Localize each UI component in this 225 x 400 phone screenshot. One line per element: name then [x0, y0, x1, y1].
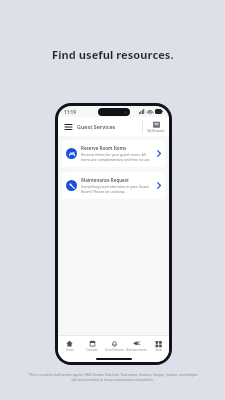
staticText: My Requests	[147, 129, 165, 133]
staticText: Find useful resources.	[52, 47, 174, 62]
button[interactable]: My Requests	[143, 117, 169, 136]
button[interactable]: Calendar	[81, 336, 103, 356]
staticText: Calendar	[86, 348, 98, 352]
staticText: *This is a custom built service app for …	[26, 373, 199, 382]
staticText: Home	[66, 348, 74, 352]
button[interactable]: Maintenance Request	[62, 172, 165, 199]
staticText: Guest Services	[105, 348, 124, 352]
staticText: Announcements	[126, 348, 147, 352]
staticText: Something need attention in your Guest R…	[81, 184, 155, 194]
staticText: Tools	[155, 348, 162, 352]
button[interactable]: Home	[58, 336, 81, 356]
staticText: Reserve items for your guest room. All i…	[81, 152, 155, 162]
button[interactable]: Guest Services	[103, 336, 125, 356]
staticText: Maintenance Request	[81, 177, 129, 183]
staticText: Reserve Room Items	[81, 145, 127, 151]
staticText: Guest Services	[77, 123, 116, 130]
staticText: 11:19	[64, 109, 76, 115]
button[interactable]: Announcements	[125, 336, 147, 356]
button[interactable]: Reserve Room Items	[62, 140, 165, 167]
button[interactable]: Menu	[63, 121, 74, 132]
button[interactable]: Tools	[147, 336, 169, 356]
